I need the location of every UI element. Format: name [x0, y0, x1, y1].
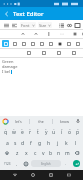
- button[interactable]: Image: [73, 21, 81, 29]
- staticText: 3: [21, 127, 23, 130]
- button[interactable]: a: [3, 138, 11, 148]
- staticText: ?123: [4, 162, 11, 166]
- staticText: e: [21, 129, 24, 136]
- button[interactable]: Link: [65, 21, 73, 29]
- button[interactable]: Emoji: [21, 158, 30, 169]
- button[interactable]: j: [53, 138, 62, 148]
- button[interactable]: Style 7: [74, 40, 81, 47]
- button[interactable]: c: [31, 148, 39, 158]
- button[interactable]: Space: [31, 160, 61, 167]
- button[interactable]: ?123: [1, 158, 13, 169]
- button[interactable]: Google: [2, 118, 8, 124]
- button[interactable]: k: [62, 138, 71, 148]
- button[interactable]: h: [44, 138, 53, 148]
- button[interactable]: t: [34, 127, 42, 138]
- button[interactable]: Format SQ: [41, 50, 47, 56]
- button[interactable]: Backspace: [71, 148, 82, 158]
- staticText: o: [68, 129, 72, 136]
- staticText: 8: [61, 127, 63, 130]
- button[interactable]: Style 6: [65, 40, 72, 47]
- button[interactable]: n: [55, 148, 63, 158]
- button[interactable]: i: [58, 127, 66, 138]
- staticText: m: [65, 150, 70, 157]
- button[interactable]: Format DOTS: [59, 31, 65, 37]
- button[interactable]: b: [47, 148, 55, 158]
- button[interactable]: Style 3: [38, 40, 45, 47]
- button[interactable]: Home: [29, 171, 37, 179]
- button[interactable]: Format SQ: [26, 50, 32, 56]
- staticText: 0: [77, 127, 79, 130]
- staticText: a: [6, 140, 9, 147]
- button[interactable]: m: [63, 148, 71, 158]
- button[interactable]: v: [39, 148, 47, 158]
- button[interactable]: Size: [38, 22, 52, 28]
- button[interactable]: p: [74, 127, 82, 138]
- button[interactable]: Recents: [47, 171, 55, 179]
- staticText: English: [41, 162, 51, 166]
- staticText: n: [57, 150, 61, 157]
- button[interactable]: Style 4: [47, 40, 54, 47]
- staticText: q: [4, 129, 8, 136]
- button[interactable]: Font: [20, 22, 36, 28]
- button[interactable]: g: [35, 138, 44, 148]
- staticText: r: [29, 129, 32, 136]
- button[interactable]: Format REDO: [33, 31, 39, 37]
- button[interactable]: Back: [11, 171, 19, 179]
- button[interactable]: Selected style: [2, 40, 9, 47]
- button[interactable]: f: [27, 138, 35, 148]
- button[interactable]: x: [22, 148, 31, 158]
- staticText: I bel: [2, 69, 11, 74]
- staticText: Font: [21, 23, 32, 28]
- button[interactable]: Enter: [70, 158, 82, 169]
- button[interactable]: List: [57, 21, 65, 29]
- button[interactable]: e: [18, 127, 26, 138]
- button[interactable]: u: [50, 127, 58, 138]
- staticText: b: [49, 150, 53, 157]
- button[interactable]: Format PAINT: [72, 31, 78, 37]
- button[interactable]: Shift: [1, 148, 13, 158]
- button[interactable]: Back: [0, 7, 13, 20]
- staticText: Size: [39, 23, 48, 28]
- button[interactable]: q: [1, 127, 10, 138]
- button[interactable]: Format SQ: [71, 50, 77, 56]
- button[interactable]: Style 1: [20, 40, 27, 47]
- button[interactable]: Format SQ: [56, 50, 62, 56]
- button[interactable]: Format BOLD_I: [46, 31, 52, 37]
- staticText: 2: [13, 127, 15, 130]
- button[interactable]: Indent: [10, 21, 18, 29]
- button[interactable]: know: [53, 116, 75, 126]
- staticText: f: [30, 140, 32, 147]
- staticText: v: [42, 150, 45, 157]
- staticText: c: [34, 150, 37, 157]
- button[interactable]: o: [66, 127, 74, 138]
- button[interactable]: s: [11, 138, 19, 148]
- button[interactable]: w: [10, 127, 18, 138]
- button[interactable]: Style 5: [56, 40, 63, 47]
- button[interactable]: Style 0: [11, 40, 18, 47]
- staticText: d: [21, 140, 25, 147]
- button[interactable]: the: [30, 116, 52, 126]
- button[interactable]: Voice input: [75, 118, 81, 124]
- button[interactable]: Format UNDO: [20, 31, 26, 37]
- button[interactable]: l: [71, 138, 80, 148]
- staticText: 6: [45, 127, 47, 130]
- staticText: p: [76, 129, 80, 136]
- button[interactable]: ,: [13, 158, 21, 169]
- staticText: z: [16, 150, 19, 157]
- button[interactable]: Keyboard: [65, 171, 73, 179]
- staticText: Text Editor: [13, 10, 44, 18]
- staticText: 9: [69, 127, 71, 130]
- staticText: damage: [2, 64, 18, 69]
- button[interactable]: y: [42, 127, 50, 138]
- button[interactable]: Align: [2, 21, 10, 29]
- button[interactable]: r: [26, 127, 34, 138]
- button[interactable]: let's: [8, 116, 29, 126]
- button[interactable]: d: [19, 138, 27, 148]
- button[interactable]: Style 2: [29, 40, 36, 47]
- button[interactable]: z: [13, 148, 22, 158]
- staticText: t: [37, 129, 39, 136]
- staticText: the: [38, 119, 44, 124]
- staticText: know: [60, 119, 69, 124]
- staticText: .: [65, 161, 67, 166]
